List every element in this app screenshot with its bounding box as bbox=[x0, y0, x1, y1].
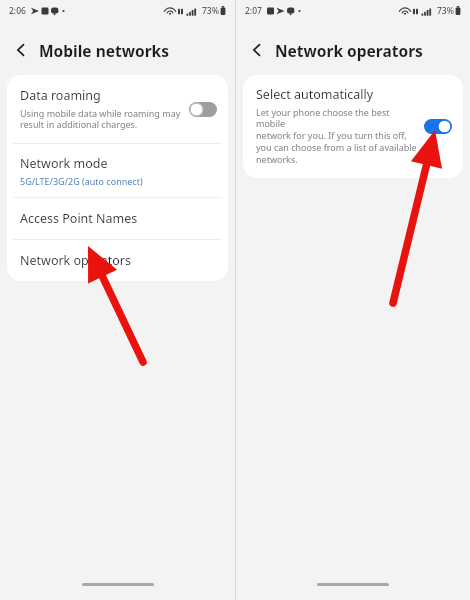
button[interactable]: Toggle on bbox=[424, 119, 452, 134]
staticText: 5G/LTE/3G/2G (auto connect) bbox=[20, 175, 143, 187]
staticText: Data roaming bbox=[20, 87, 101, 104]
staticText: Mobile networks bbox=[39, 40, 169, 61]
staticText: Using mobile data while roaming may resu… bbox=[20, 107, 181, 131]
button[interactable]: Select automatically bbox=[243, 75, 463, 178]
button[interactable]: Network mode bbox=[7, 144, 228, 197]
staticText: Select automatically bbox=[256, 86, 374, 103]
button[interactable]: Data roaming bbox=[7, 75, 228, 143]
staticText: Network operators bbox=[20, 252, 131, 269]
staticText: Let your phone choose the best mobile ne… bbox=[256, 106, 418, 166]
staticText: 73% bbox=[202, 5, 219, 17]
staticText: Network operators bbox=[275, 40, 423, 61]
button[interactable]: Back bbox=[8, 37, 34, 63]
staticText: Access Point Names bbox=[20, 210, 138, 227]
button[interactable]: Toggle off bbox=[189, 102, 217, 117]
button[interactable]: Access Point Names bbox=[7, 198, 228, 239]
button[interactable]: Back bbox=[244, 37, 270, 63]
button[interactable]: Network operators bbox=[7, 240, 228, 281]
staticText: 2:06 bbox=[9, 5, 26, 17]
staticText: Network mode bbox=[20, 155, 108, 172]
staticText: 73% bbox=[437, 5, 454, 17]
staticText: 2:07 bbox=[245, 5, 262, 17]
